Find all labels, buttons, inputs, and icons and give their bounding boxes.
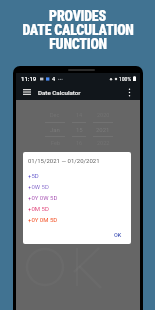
staticText: 100% xyxy=(119,76,132,82)
staticText: 15 xyxy=(76,126,83,133)
staticText: DATE CALCULATION xyxy=(22,22,134,35)
staticText: +0W 5D xyxy=(28,183,49,190)
staticText: PROVIDES xyxy=(49,8,106,21)
button[interactable]: +5D xyxy=(23,170,131,181)
staticText: 01/15/2021 — 01/20/2021 xyxy=(28,157,100,164)
button[interactable]: OK xyxy=(111,230,125,240)
staticText: OK xyxy=(114,232,122,238)
staticText: 11:19 xyxy=(21,75,37,82)
staticText: +0Y 0W 5D xyxy=(28,194,58,201)
button[interactable]: +0Y 0W 5D xyxy=(23,192,131,203)
button[interactable]: More options xyxy=(122,85,136,99)
button[interactable]: +0Y 0M 5D xyxy=(23,214,131,225)
staticText: Jan xyxy=(50,126,60,133)
staticText: FUNCTION xyxy=(49,36,107,49)
button[interactable]: +0M 5D xyxy=(23,203,131,214)
staticText: 2021 xyxy=(96,126,110,133)
staticText: +0Y 0M 5D xyxy=(28,216,58,223)
button[interactable]: +0W 5D xyxy=(23,181,131,192)
staticText: +0M 5D xyxy=(28,205,49,212)
staticText: 4 xyxy=(52,76,56,82)
staticText: +5D xyxy=(28,172,39,179)
staticText: Date Calculator xyxy=(38,89,81,96)
button[interactable]: Open navigation menu xyxy=(20,85,34,99)
